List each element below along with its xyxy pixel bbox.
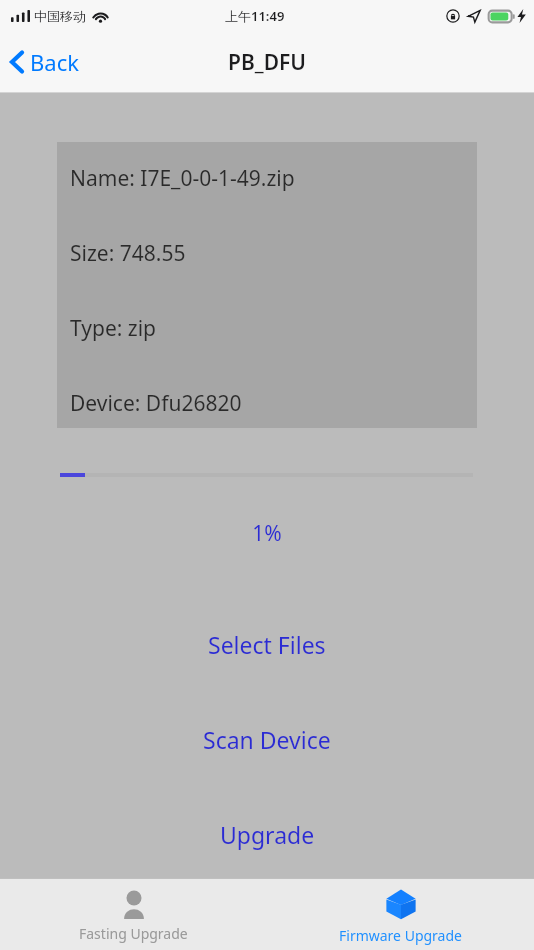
staticText: Type: zip [70, 314, 157, 343]
button[interactable]: Select Files [0, 626, 534, 663]
button[interactable]: Upgrade [0, 816, 534, 853]
staticText: Scan Device [203, 724, 331, 755]
staticText: Size: 748.55 [70, 239, 186, 268]
staticText: 上午11:49 [225, 7, 285, 25]
staticText: Back [30, 47, 79, 77]
staticText: Firmware Upgrade [339, 926, 462, 945]
button[interactable]: Firmware Upgrade [267, 879, 534, 950]
button[interactable]: Fasting Upgrade [0, 879, 267, 950]
button[interactable]: Scan Device [0, 721, 534, 758]
staticText: 1% [0, 519, 534, 548]
staticText: 中国移动 [34, 8, 86, 24]
staticText: Device: Dfu26820 [70, 389, 242, 418]
staticText: Name: I7E_0-0-1-49.zip [70, 164, 295, 193]
staticText: PB_DFU [228, 48, 306, 77]
staticText: Fasting Upgrade [79, 924, 188, 943]
staticText: Select Files [208, 629, 326, 660]
button[interactable]: Back [0, 39, 91, 85]
staticText: Upgrade [220, 819, 315, 850]
